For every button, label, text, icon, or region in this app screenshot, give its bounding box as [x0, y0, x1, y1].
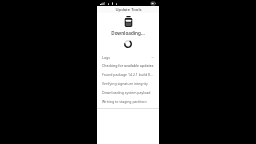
- staticText: Logs: [102, 55, 111, 60]
- staticText: Writing to staging partition: [102, 99, 147, 104]
- staticText: Downloading system payload: [102, 90, 151, 95]
- button[interactable]: Found package 14.2.1 build 8820: [102, 70, 154, 79]
- button[interactable]: Verifying signature integrity: [102, 79, 154, 88]
- staticText: Verifying signature integrity: [102, 81, 148, 86]
- staticText: Update Tools: [115, 7, 142, 13]
- button[interactable]: Checking for available updates: [102, 61, 154, 70]
- other: Expand logs: [151, 56, 154, 59]
- staticText: Checking for available updates: [102, 63, 154, 68]
- button[interactable]: Downloading system payload: [102, 88, 154, 97]
- staticText: Downloading…: [111, 30, 145, 36]
- button[interactable]: Logs: [97, 54, 159, 61]
- button[interactable]: Writing to staging partition: [102, 97, 154, 106]
- staticText: Found package 14.2.1 build 8820: [102, 72, 154, 77]
